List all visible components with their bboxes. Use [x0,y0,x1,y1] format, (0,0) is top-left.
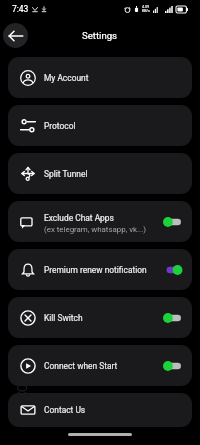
button[interactable]: My Account [8,57,192,98]
button[interactable]: Connect when Start [8,345,192,386]
button[interactable]: Toggle [163,217,183,227]
button[interactable]: Toggle [163,313,183,323]
button[interactable]: Kill Switch [8,297,192,338]
button[interactable]: Toggle [163,265,183,275]
staticText: Exclude Chat Apps [44,213,114,223]
button[interactable]: Toggle [163,361,183,371]
button[interactable]: Back [3,23,28,48]
staticText: KB/s [142,9,150,13]
button[interactable]: Premium renew notification [8,249,192,290]
staticText: Connect when Start [44,361,118,371]
staticText: Settings [82,30,118,41]
staticText: 4.09 [142,5,150,9]
staticText: My Account [44,73,89,83]
button[interactable]: Contact Us [8,393,192,427]
staticText: Protocol [44,121,76,131]
staticText: Split Tunnel [44,169,88,179]
staticText: Contact Us [44,405,86,415]
button[interactable]: Protocol [8,105,192,146]
staticText: Premium renew notification [44,265,147,275]
button[interactable]: Exclude Chat Apps [8,201,192,242]
staticText: 7:43 [12,4,29,14]
staticText: Kill Switch [44,313,83,323]
staticText: (ex telegram, whatsapp, vk...) [44,225,146,234]
button[interactable]: Split Tunnel [8,153,192,194]
